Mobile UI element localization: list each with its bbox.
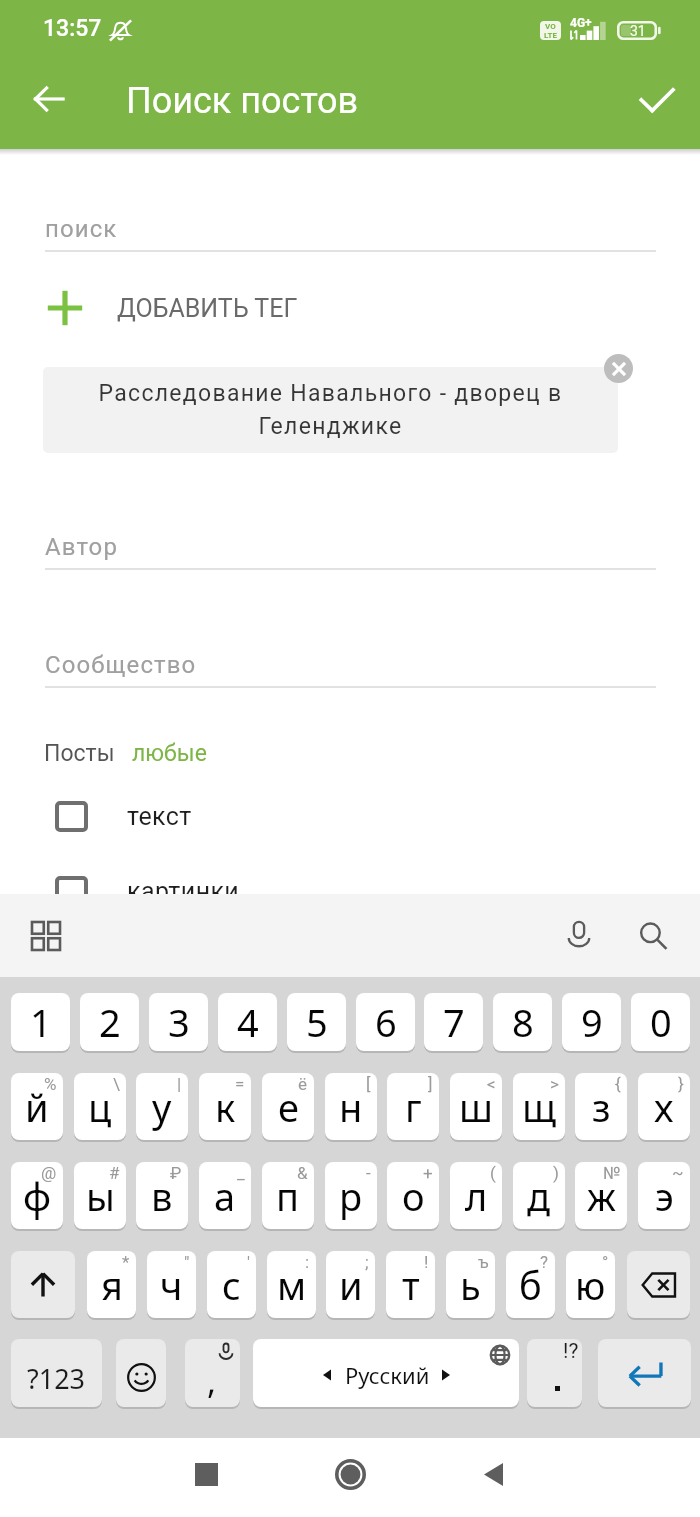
button[interactable]: ч xyxy=(147,1251,196,1318)
button[interactable]: Search xyxy=(625,908,681,964)
staticText: ~ xyxy=(672,1163,684,1183)
button[interactable]: ф xyxy=(11,1162,63,1229)
button[interactable]: л xyxy=(450,1162,502,1229)
button[interactable]: SHIFT xyxy=(11,1251,75,1318)
button[interactable]: 5 xyxy=(287,993,346,1051)
button[interactable]: ю xyxy=(566,1251,615,1318)
staticText: # xyxy=(109,1163,120,1183)
button[interactable]: ц xyxy=(74,1073,126,1140)
button[interactable]: 8 xyxy=(493,993,552,1051)
staticText: п xyxy=(276,1170,300,1222)
button[interactable]: Расследование Навального - дворец в Геле… xyxy=(43,367,618,453)
staticText: 2 xyxy=(99,996,121,1048)
button[interactable]: SPACE xyxy=(253,1339,519,1407)
button[interactable]: Home xyxy=(310,1435,390,1514)
staticText: 5 xyxy=(306,996,328,1048)
button[interactable]: 9 xyxy=(562,993,621,1051)
staticText: 6 xyxy=(375,996,397,1048)
staticText: 1 xyxy=(30,996,52,1048)
button[interactable]: Back xyxy=(453,1435,533,1514)
button[interactable]: ENTER xyxy=(598,1339,691,1407)
button[interactable]: ?123 xyxy=(11,1339,102,1407)
button[interactable]: й xyxy=(11,1073,63,1140)
staticText: 7 xyxy=(443,996,465,1048)
button[interactable]: Recent apps xyxy=(166,1435,246,1514)
button[interactable]: х xyxy=(638,1073,690,1140)
staticText: т xyxy=(402,1259,420,1311)
button[interactable]: Remove tag xyxy=(604,354,633,383)
staticText: Сообщество xyxy=(45,651,197,679)
button[interactable]: е xyxy=(262,1073,314,1140)
button[interactable]: картинки xyxy=(0,865,700,917)
staticText: ц xyxy=(88,1081,112,1133)
button[interactable]: любые xyxy=(132,740,207,767)
staticText: VO xyxy=(545,22,556,31)
button[interactable]: Apply xyxy=(621,63,693,135)
staticText: 9 xyxy=(581,996,603,1048)
staticText: а xyxy=(214,1170,236,1222)
staticText: \ xyxy=(113,1074,120,1094)
button[interactable]: ДОБАВИТЬ ТЕГ xyxy=(0,277,700,339)
button[interactable]: , xyxy=(185,1339,240,1407)
button[interactable]: б xyxy=(506,1251,555,1318)
staticText: } xyxy=(678,1074,684,1094)
staticText: " xyxy=(184,1252,190,1272)
button[interactable]: EMOJI xyxy=(116,1339,166,1407)
staticText: ; xyxy=(365,1252,369,1272)
staticText: ( xyxy=(490,1163,496,1183)
button[interactable]: а xyxy=(199,1162,251,1229)
button[interactable]: р xyxy=(325,1162,377,1229)
staticText: !? xyxy=(563,1339,579,1364)
button[interactable]: э xyxy=(638,1162,690,1229)
button[interactable]: и xyxy=(326,1251,375,1318)
button[interactable]: я xyxy=(87,1251,136,1318)
staticText: ш xyxy=(459,1081,493,1133)
staticText: - xyxy=(366,1163,371,1183)
button[interactable]: Keyboard layout xyxy=(18,908,74,964)
button[interactable]: BKSP xyxy=(627,1251,690,1318)
staticText: Расследование Навального - дворец в Геле… xyxy=(91,380,570,440)
staticText: 0 xyxy=(650,996,672,1048)
button[interactable]: о xyxy=(387,1162,439,1229)
button[interactable]: в xyxy=(136,1162,188,1229)
staticText: ё xyxy=(298,1074,308,1094)
button[interactable]: 2 xyxy=(80,993,139,1051)
button[interactable]: п xyxy=(262,1162,314,1229)
button[interactable]: у xyxy=(136,1073,188,1140)
button[interactable]: Back xyxy=(13,63,85,135)
button[interactable]: 4 xyxy=(218,993,277,1051)
staticText: ъ xyxy=(478,1252,489,1272)
staticText: > xyxy=(550,1074,559,1094)
staticText: Поиск постов xyxy=(126,80,359,122)
staticText: Русский xyxy=(345,1360,430,1390)
staticText: ° xyxy=(602,1252,609,1272)
staticText: ф xyxy=(23,1170,52,1222)
button[interactable]: ж xyxy=(575,1162,627,1229)
button[interactable]: г xyxy=(387,1073,439,1140)
staticText: в xyxy=(151,1170,173,1222)
button[interactable]: 3 xyxy=(149,993,208,1051)
button[interactable]: 1 xyxy=(11,993,70,1051)
button[interactable]: к xyxy=(199,1073,251,1140)
button[interactable]: щ xyxy=(513,1073,565,1140)
button[interactable]: текст xyxy=(0,790,700,842)
button[interactable]: DOT xyxy=(527,1339,582,1407)
button[interactable]: 0 xyxy=(631,993,690,1051)
button[interactable]: с xyxy=(207,1251,256,1318)
button[interactable]: з xyxy=(575,1073,627,1140)
button[interactable]: ь xyxy=(446,1251,495,1318)
staticText: 3 xyxy=(168,996,190,1048)
button[interactable]: н xyxy=(325,1073,377,1140)
staticText: LTE xyxy=(544,31,557,40)
button[interactable]: ш xyxy=(450,1073,502,1140)
staticText: | xyxy=(177,1074,182,1094)
button[interactable]: ы xyxy=(74,1162,126,1229)
button[interactable]: т xyxy=(386,1251,435,1318)
button[interactable]: м xyxy=(267,1251,316,1318)
staticText: ₽ xyxy=(170,1163,182,1183)
staticText: ь xyxy=(460,1259,481,1311)
button[interactable]: 7 xyxy=(424,993,483,1051)
button[interactable]: д xyxy=(513,1162,565,1229)
button[interactable]: 6 xyxy=(356,993,415,1051)
button[interactable]: Voice input xyxy=(551,908,607,964)
